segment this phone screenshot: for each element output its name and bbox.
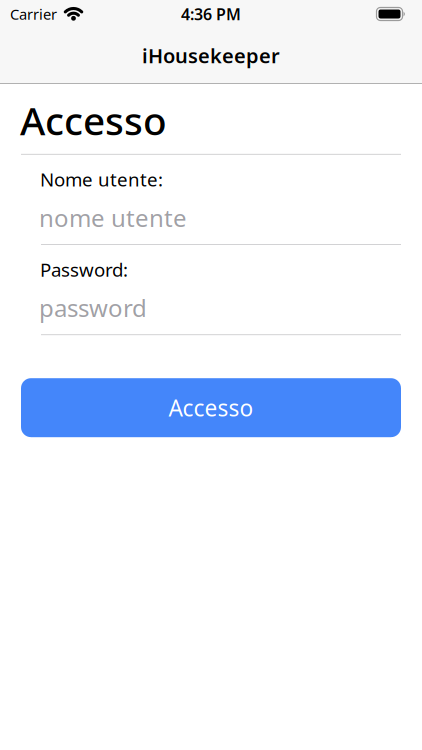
staticText: nome utente bbox=[39, 202, 187, 233]
staticText: Accesso bbox=[168, 393, 253, 423]
staticText: 4:36 PM bbox=[181, 3, 241, 25]
button[interactable]: Password bbox=[0, 282, 422, 335]
staticText: Nome utente: bbox=[40, 167, 163, 192]
staticText: iHousekeeper bbox=[142, 42, 280, 69]
staticText: Accesso bbox=[20, 94, 167, 146]
button[interactable]: Nome utente bbox=[0, 192, 422, 245]
staticText: Carrier bbox=[10, 4, 57, 24]
staticText: Password: bbox=[40, 257, 128, 282]
staticText: password bbox=[39, 292, 147, 324]
button[interactable]: Accesso bbox=[21, 378, 401, 437]
